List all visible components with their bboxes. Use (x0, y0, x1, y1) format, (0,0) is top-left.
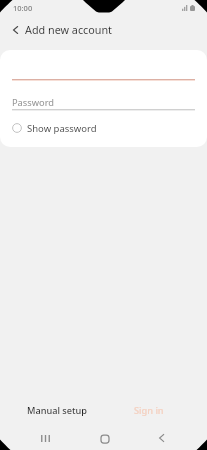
staticText: Show password (27, 122, 97, 135)
staticText: Sign in (134, 404, 164, 417)
staticText: Add new account (25, 22, 113, 37)
button[interactable]: Navigate up (3, 18, 27, 42)
staticText: 10:00 (13, 3, 33, 13)
button[interactable]: Recent apps (17, 424, 74, 450)
button[interactable]: Sign in (103, 397, 195, 423)
button[interactable]: Home (74, 424, 132, 450)
button[interactable]: Show password (0, 119, 207, 137)
button[interactable]: Back (132, 424, 190, 450)
staticText: Manual setup (27, 404, 88, 417)
staticText: Password (12, 96, 55, 109)
button[interactable]: Manual setup (12, 397, 103, 423)
